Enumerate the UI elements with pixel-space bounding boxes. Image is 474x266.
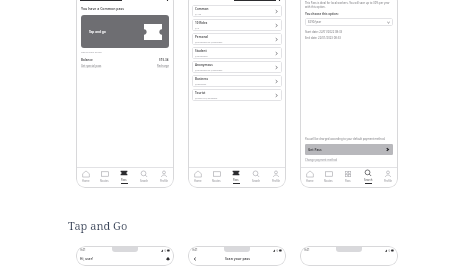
staticText: This Pass is ideal for local workers. Yo…	[305, 1, 393, 8]
staticText: Pass	[233, 178, 239, 182]
staticText: Profile	[160, 179, 168, 183]
button[interactable]: Pass	[338, 168, 358, 185]
button[interactable]: Anonymous	[192, 61, 282, 73]
staticText: $5/day or $25/week	[195, 96, 218, 99]
button[interactable]: Notifications	[164, 0, 170, 1]
staticText: Personal	[195, 35, 209, 39]
button[interactable]: Home	[300, 168, 319, 185]
staticText: 9:41	[80, 248, 86, 252]
staticText: $54/month or $500/year	[195, 40, 223, 43]
button[interactable]: Search	[358, 168, 378, 185]
staticText: Tourist	[195, 91, 206, 95]
staticText: Tap and Go	[68, 218, 128, 233]
button[interactable]: Back	[192, 256, 197, 261]
button[interactable]: Profile	[266, 168, 286, 185]
button[interactable]: Profile	[154, 168, 174, 185]
staticText: Search	[252, 179, 261, 183]
staticText: $290/year	[308, 20, 387, 24]
staticText: Tap on card to use	[81, 50, 102, 53]
button[interactable]: Tap and go	[81, 15, 169, 48]
staticText: Get special pass	[81, 64, 102, 68]
button[interactable]: Home	[76, 168, 95, 185]
button[interactable]: Home	[188, 168, 207, 185]
staticText: Change payment method	[305, 158, 338, 162]
staticText: Home	[82, 179, 90, 183]
button[interactable]: Common	[192, 5, 282, 17]
button[interactable]: Routes	[207, 168, 226, 185]
staticText: You have a Common pass	[81, 6, 124, 11]
staticText: Recharge	[157, 64, 169, 68]
button[interactable]: Pass	[114, 168, 134, 185]
button[interactable]: Change payment method	[305, 158, 338, 162]
button[interactable]: Get Pass	[305, 144, 393, 155]
staticText: $10	[195, 26, 200, 29]
staticText: $40/month	[195, 54, 208, 57]
button[interactable]: Profile	[378, 168, 398, 185]
staticText: $36/month or $350/year	[195, 68, 223, 71]
staticText: Hi, user!	[80, 257, 165, 261]
button[interactable]: Pass	[226, 168, 246, 185]
staticText: Search	[364, 178, 373, 182]
button[interactable]: 10 Rides	[192, 19, 282, 31]
staticText: Home	[306, 179, 314, 183]
button[interactable]: Notifications	[165, 256, 170, 261]
staticText: Routes	[100, 179, 109, 183]
staticText: You will be charged according to your de…	[305, 137, 386, 141]
staticText: $290/year	[195, 82, 207, 85]
staticText: Routes	[212, 179, 221, 183]
staticText: $15.34	[159, 58, 169, 62]
button[interactable]: Notifications	[276, 0, 282, 1]
button[interactable]: Search	[134, 168, 154, 185]
staticText: Start date: 22/01/2022 08:33	[305, 30, 343, 34]
button[interactable]: Routes	[95, 168, 114, 185]
button[interactable]: Business	[192, 75, 282, 87]
staticText: 9:41	[304, 248, 310, 252]
staticText: Business	[195, 77, 209, 81]
staticText: Pass	[121, 178, 127, 182]
staticText: Balance	[81, 58, 93, 62]
button[interactable]: Student	[192, 47, 282, 59]
button[interactable]: Search	[246, 168, 266, 185]
staticText: Routes	[324, 179, 333, 183]
staticText: Get Pass	[308, 148, 385, 152]
staticText: Search	[140, 179, 149, 183]
button[interactable]: Routes	[319, 168, 338, 185]
staticText: Home	[194, 179, 202, 183]
staticText: You choose this option:	[305, 12, 339, 16]
button[interactable]: Get special pass	[81, 64, 102, 68]
staticText: 9:41	[192, 248, 198, 252]
staticText: Pass	[345, 179, 351, 183]
button[interactable]: $290/year	[305, 18, 393, 26]
staticText: Anonymous	[195, 63, 213, 67]
staticText: End date: 22/01/2023 08:33	[305, 36, 341, 40]
button[interactable]: Tourist	[192, 89, 282, 101]
staticText: Profile	[272, 179, 280, 183]
staticText: Student	[195, 49, 207, 53]
staticText: Scan your pass	[225, 256, 250, 261]
staticText: 10 Rides	[195, 21, 208, 25]
staticText: Profile	[384, 179, 392, 183]
staticText: Common	[195, 7, 209, 11]
button[interactable]: Recharge	[157, 64, 169, 68]
button[interactable]: Personal	[192, 33, 282, 45]
staticText: Tap and go	[89, 30, 106, 34]
staticText: $1.25	[195, 12, 202, 15]
